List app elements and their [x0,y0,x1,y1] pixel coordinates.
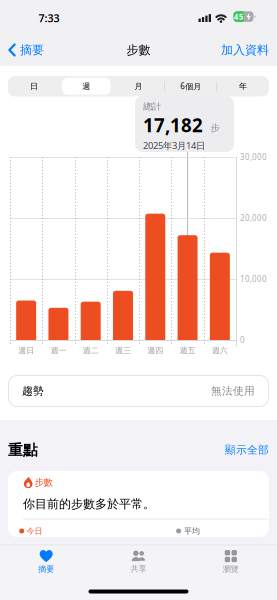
button[interactable]: 共享 [98,545,178,579]
staticText: 日 [30,81,38,91]
staticText: 週二 [83,346,99,355]
staticText: 共享 [130,564,146,574]
staticText: 週四 [147,346,163,355]
staticText: 重點 [8,441,38,459]
staticText: 摘要 [20,43,44,57]
button[interactable]: 週 [62,76,111,96]
staticText: 步 [210,122,219,134]
button[interactable]: 月 [114,76,163,96]
staticText: 總計 [143,101,161,112]
staticText: 2025年3月14日 [143,139,205,152]
staticText: 週六 [212,346,228,355]
staticText: 45 [234,11,244,22]
button[interactable]: 瀏覽 [191,545,271,579]
staticText: 週一 [50,346,66,355]
button[interactable]: 6個月 [166,76,215,96]
staticText: 趨勢 [22,384,44,397]
button[interactable]: 顯示全部 [189,440,269,460]
staticText: 平均 [184,526,200,536]
button[interactable]: 步數 [8,471,269,537]
staticText: 7:33 [38,11,59,25]
button[interactable]: 返回摘要 [8,37,68,63]
button[interactable]: 趨勢 [8,375,269,407]
staticText: 步數 [126,43,150,57]
staticText: 你目前的步數多於平常。 [23,497,155,511]
staticText: 30,000 [240,152,267,162]
staticText: 20,000 [240,213,267,223]
staticText: 10,000 [240,274,267,284]
staticText: 瀏覽 [223,564,239,574]
staticText: 17,182 [143,113,203,137]
staticText: 週 [82,81,90,91]
staticText: 週日 [18,346,34,355]
staticText: 無法使用 [211,384,255,397]
staticText: 年 [239,81,247,91]
staticText: 6個月 [180,81,201,91]
staticText: 週三 [115,346,131,355]
staticText: 加入資料 [221,43,269,57]
staticText: 今日 [26,526,42,536]
button[interactable]: 日 [9,76,59,96]
button[interactable]: 摘要 [6,545,86,579]
staticText: 摘要 [38,564,54,574]
staticText: 週五 [180,346,196,355]
staticText: 步數 [35,477,53,488]
button[interactable]: 加入資料 [199,37,269,63]
button[interactable]: 年 [218,76,267,96]
staticText: 0 [240,335,245,345]
staticText: 顯示全部 [225,443,269,456]
staticText: 月 [134,81,142,91]
